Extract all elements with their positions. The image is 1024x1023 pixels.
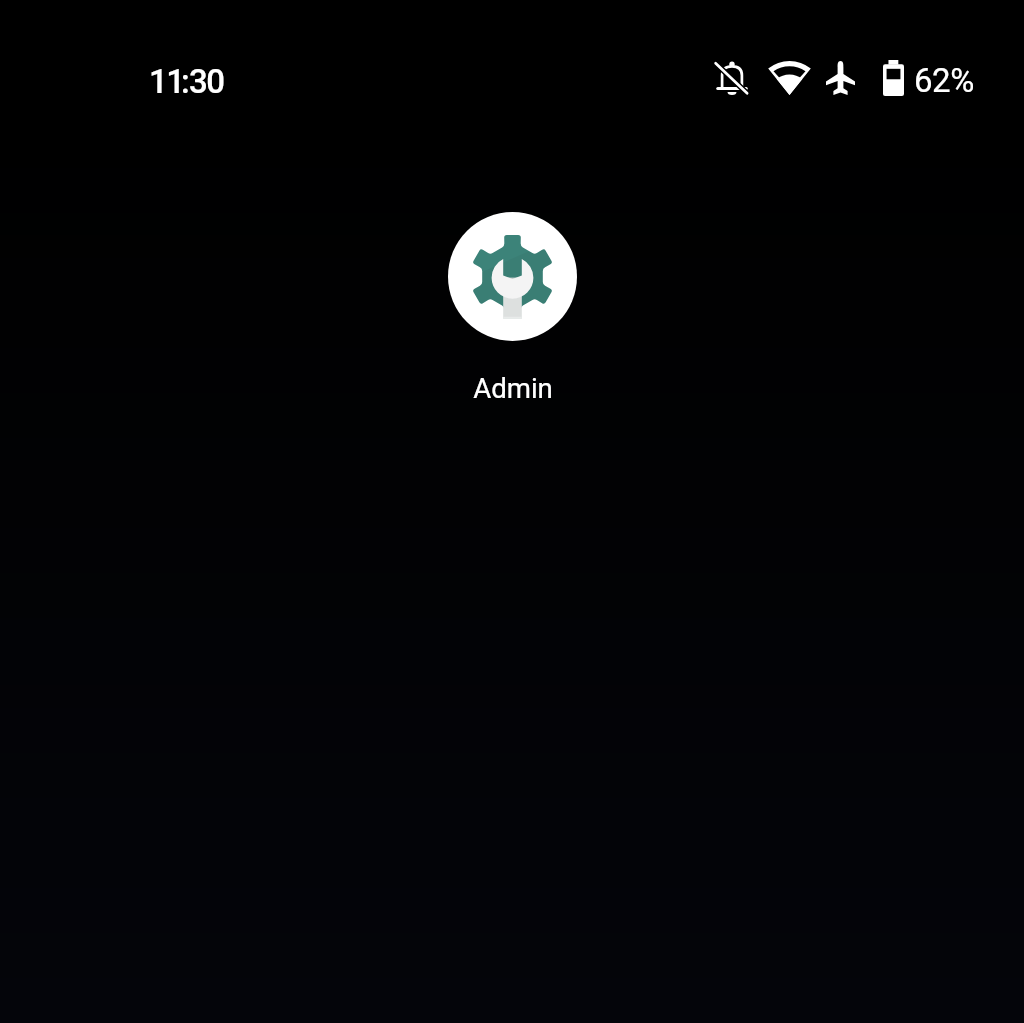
staticText: 30 <box>189 62 224 101</box>
other: Notifications silenced <box>714 60 750 96</box>
other: Wi-Fi <box>769 61 810 95</box>
staticText: 62% <box>914 61 974 100</box>
staticText: : <box>181 62 189 101</box>
other: Battery 62 percent <box>883 60 904 96</box>
staticText: Admin <box>473 372 553 404</box>
other: Airplane mode on <box>826 61 855 95</box>
staticText: 11 <box>149 62 184 101</box>
button[interactable]: Admin <box>448 212 577 404</box>
